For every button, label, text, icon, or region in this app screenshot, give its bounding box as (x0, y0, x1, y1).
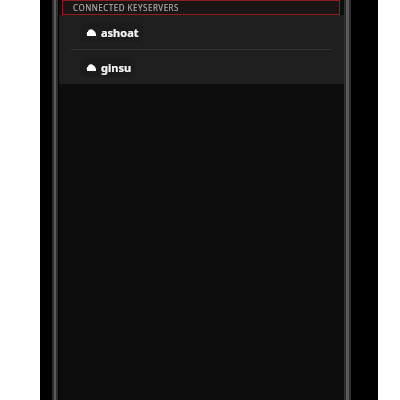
staticText: CONNECTED KEYSERVERS (73, 2, 179, 13)
button[interactable]: Keyserver (80, 23, 143, 42)
staticText: ginsu (101, 60, 132, 75)
staticText: ashoat (101, 25, 139, 40)
button[interactable]: CONNECTED KEYSERVERS (62, 0, 340, 15)
other: Keyserver (87, 64, 96, 71)
button[interactable]: Keyserver (59, 50, 344, 84)
button[interactable]: Keyserver (59, 15, 344, 49)
button[interactable]: Keyserver (80, 58, 135, 77)
other: Keyserver (87, 29, 96, 36)
